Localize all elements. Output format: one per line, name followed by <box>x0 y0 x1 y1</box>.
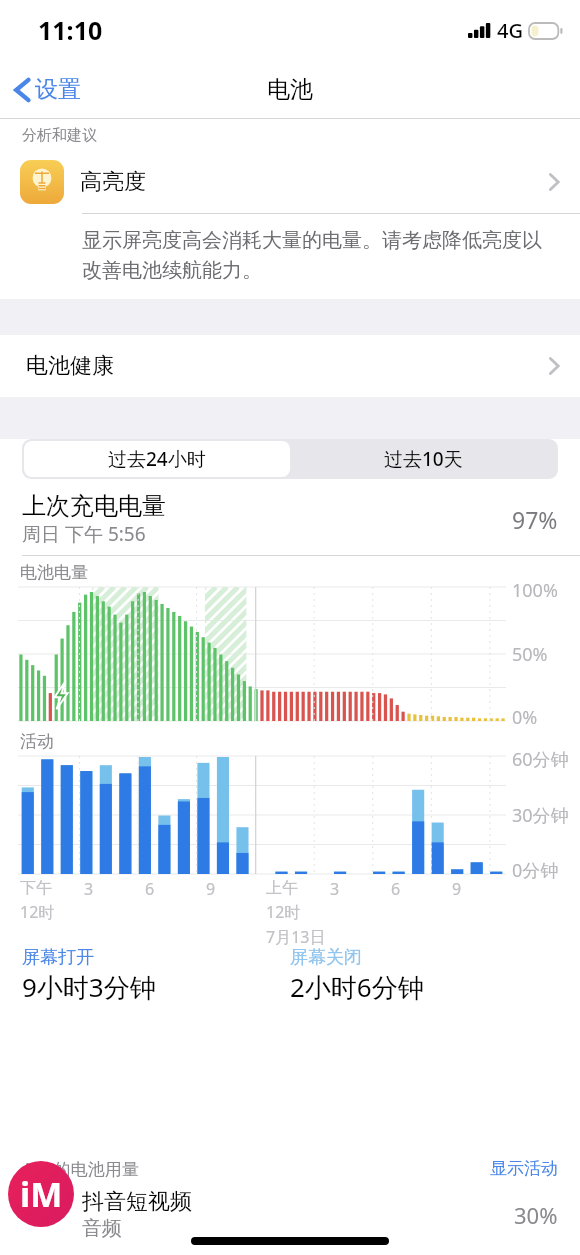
staticText: 4G <box>497 17 523 44</box>
staticText: 电池电量 <box>20 562 88 583</box>
staticText: 97% <box>512 504 558 535</box>
staticText: 11:10 <box>38 13 103 47</box>
staticText: 显示活动 <box>490 1158 558 1179</box>
staticText: 过去10天 <box>384 446 463 472</box>
staticText: 设置 <box>35 75 81 104</box>
staticText: 活动 <box>20 731 54 752</box>
staticText: 60分钟 <box>512 747 569 772</box>
staticText: 30% <box>514 1200 558 1230</box>
staticText: 100% <box>512 578 558 603</box>
button[interactable]: 屏幕打开 <box>22 946 290 1005</box>
staticText: 过去24小时 <box>108 446 206 472</box>
button[interactable]: 过去10天 <box>290 441 556 477</box>
staticText: 9小时3分钟 <box>22 969 156 1005</box>
staticText: 上次充电电量 <box>22 491 166 521</box>
staticText: 屏幕关闭 <box>290 946 362 969</box>
staticText: 0% <box>512 705 538 730</box>
staticText: 音频 <box>82 1216 122 1241</box>
staticText: 3 <box>84 878 94 900</box>
staticText: 高亮度 <box>80 168 548 196</box>
staticText: 上午 12时 7月13日 <box>266 878 326 948</box>
staticText: 9 <box>206 878 216 900</box>
button[interactable]: 过去24小时 <box>24 441 290 477</box>
staticText: 显示屏亮度高会消耗大量的电量。请考虑降低亮度以改善电池续航能力。 <box>82 228 560 283</box>
staticText: 6 <box>391 878 401 900</box>
button[interactable]: 电池健康 <box>0 335 580 397</box>
staticText: 0分钟 <box>512 858 559 883</box>
staticText: 下午 12时 <box>20 878 55 923</box>
staticText: 周日 下午 5:56 <box>22 521 146 547</box>
staticText: 电池健康 <box>26 352 114 380</box>
staticText: 分析和建议 <box>22 126 97 145</box>
staticText: 30分钟 <box>512 803 569 828</box>
button[interactable]: 抖音短视频 <box>0 1188 580 1241</box>
staticText: 6 <box>145 878 155 900</box>
button[interactable]: 显示活动 <box>490 1158 558 1179</box>
button[interactable]: 设置 <box>0 69 93 110</box>
staticText: 2小时6分钟 <box>290 969 424 1005</box>
staticText: 抖音短视频 <box>82 1188 192 1216</box>
staticText: 9 <box>452 878 462 900</box>
staticText: 屏幕打开 <box>22 946 94 969</box>
staticText: 电池 <box>267 75 313 104</box>
staticText: iM <box>20 1171 63 1217</box>
staticText: App的电池用量 <box>22 1157 490 1180</box>
button[interactable]: 高亮度 <box>0 151 580 213</box>
button[interactable]: 屏幕关闭 <box>290 946 558 1005</box>
staticText: 3 <box>330 878 340 900</box>
staticText: 50% <box>512 642 548 667</box>
